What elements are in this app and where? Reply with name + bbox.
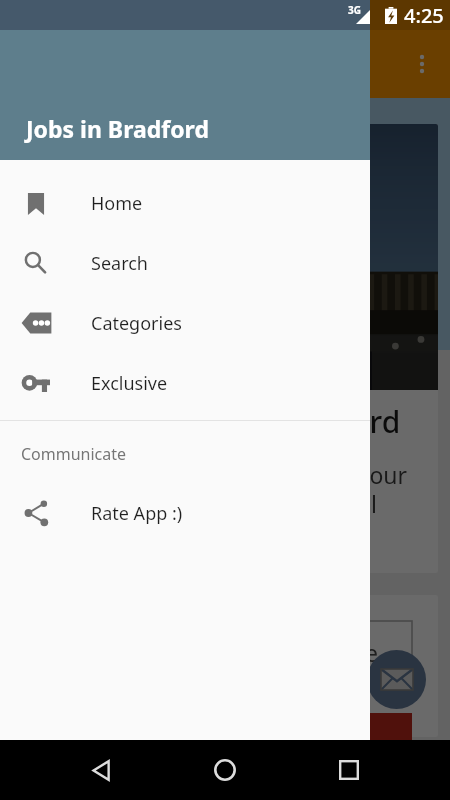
staticText: Search — [91, 251, 148, 276]
button[interactable]: Recent apps — [326, 747, 372, 793]
button[interactable]: Search — [0, 233, 370, 293]
button[interactable]: Rate App :) — [0, 483, 370, 543]
button[interactable]: Categories — [0, 293, 370, 353]
button[interactable]: Back — [78, 747, 124, 793]
button[interactable]: Home — [202, 747, 248, 793]
button[interactable]: Search all latest jobs near me — [28, 621, 412, 683]
staticText: Home — [91, 191, 143, 216]
button[interactable]: Welcome to Jobs Bradford — [12, 124, 438, 573]
staticText: Categories — [91, 311, 182, 336]
button[interactable]: Search all latest jobs near me — [12, 595, 438, 737]
staticText: 3G — [348, 3, 361, 17]
button[interactable]: Exclusive — [0, 353, 370, 413]
staticText: Communicate — [21, 443, 127, 465]
staticText: Exclusive — [91, 371, 168, 396]
button[interactable]: Send email — [367, 650, 426, 709]
staticText: Search all latest jobs near me — [62, 637, 378, 668]
staticText: 4:25 — [404, 2, 444, 29]
staticText: Please take a look around at all our lat… — [28, 459, 408, 549]
staticText: Jobs in Bradford — [26, 113, 209, 144]
staticText: Welcome to Jobs Bradford — [28, 401, 401, 442]
button[interactable]: More options — [400, 42, 444, 86]
staticText: Rate App :) — [91, 501, 183, 526]
button[interactable]: Home — [0, 173, 370, 233]
